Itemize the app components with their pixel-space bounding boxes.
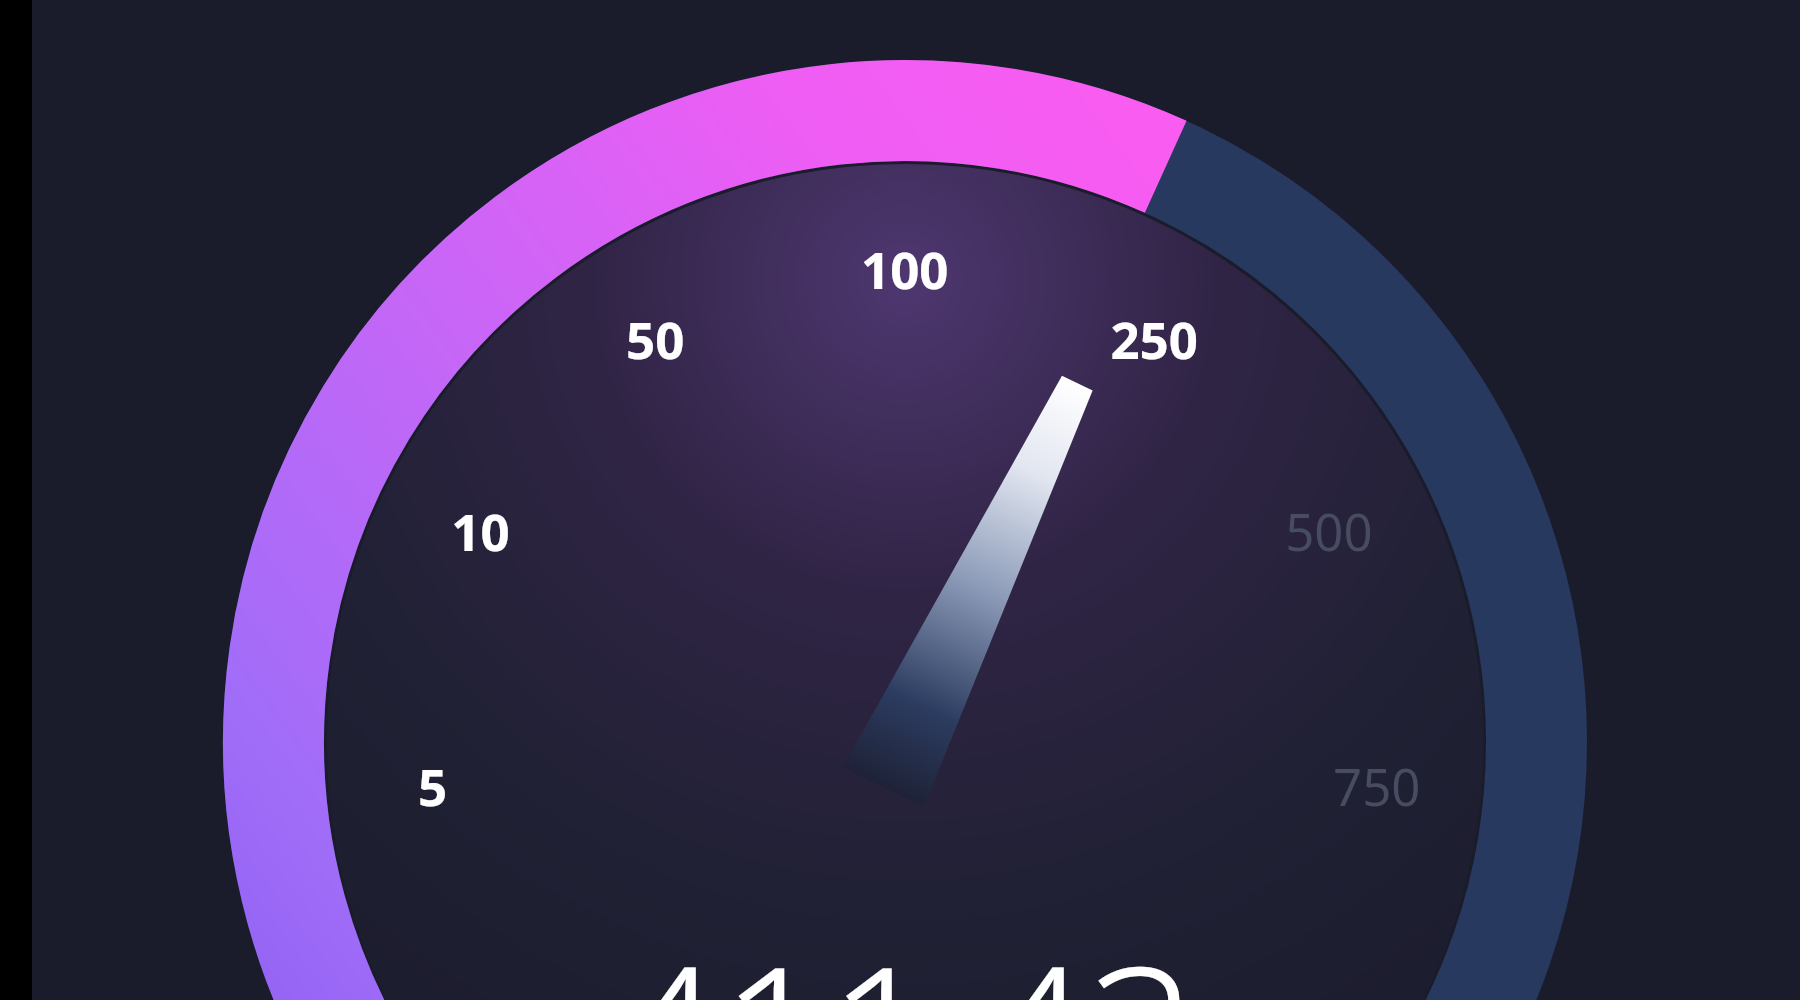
button[interactable]: Speed test gauge showing 411.43 — [0, 0, 1800, 1000]
